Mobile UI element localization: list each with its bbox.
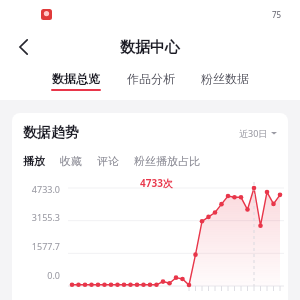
staticText: 数据趋势 [23, 124, 79, 142]
button[interactable]: 播放 [23, 154, 45, 168]
button[interactable]: Back [6, 29, 42, 65]
staticText: 数据总览 [52, 71, 100, 86]
button[interactable]: 粉丝播放占比 [134, 154, 200, 168]
staticText: 4733次 [140, 176, 173, 190]
staticText: 3155.3 [12, 211, 60, 223]
staticText: 评论 [97, 154, 119, 168]
staticText: 播放 [23, 154, 45, 168]
staticText: 1577.7 [12, 240, 60, 252]
staticText: 近30日 [239, 127, 268, 139]
staticText: 75 [272, 9, 282, 20]
button[interactable]: 数据总览 [51, 66, 101, 91]
staticText: 数据中心 [120, 38, 180, 57]
button[interactable]: 收藏 [60, 154, 82, 168]
staticText: 0.0 [12, 269, 60, 281]
staticText: 作品分析 [127, 71, 175, 86]
button[interactable]: 评论 [97, 154, 119, 168]
staticText: 粉丝播放占比 [134, 154, 200, 168]
button[interactable]: 近30日 [239, 127, 277, 139]
button[interactable]: 粉丝数据 [201, 66, 249, 89]
staticText: 粉丝数据 [201, 71, 249, 86]
staticText: 收藏 [60, 154, 82, 168]
staticText: 4733.0 [12, 183, 60, 195]
button[interactable]: 作品分析 [127, 66, 175, 89]
